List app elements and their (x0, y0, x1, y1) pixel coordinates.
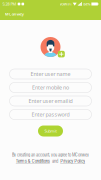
staticText: 84% (83, 1, 90, 7)
staticText: Privacy Policy (60, 158, 85, 164)
staticText: VoWiFi (59, 1, 71, 7)
staticText: Enter password (31, 111, 69, 118)
staticText: Enter mobile no (32, 84, 69, 91)
button[interactable]: Submit (38, 125, 63, 136)
staticText: 5:28 PM (2, 1, 16, 7)
staticText: Submit (44, 128, 56, 134)
button[interactable]: Enter password (9, 109, 91, 119)
button[interactable]: Terms & Conditions (16, 158, 50, 164)
button[interactable]: Privacy Policy (60, 158, 85, 164)
staticText: Enter user email id (28, 97, 72, 105)
staticText: and (52, 158, 58, 164)
button[interactable]: Enter mobile no (9, 82, 91, 92)
staticText: By creating an account, you agree to MCo… (12, 152, 89, 158)
staticText: Terms & Conditions (16, 158, 50, 164)
staticText: Enter user name (30, 70, 70, 78)
button[interactable]: Enter user email id (9, 96, 91, 106)
staticText: MConwey (5, 11, 24, 17)
button[interactable]: Enter user name (9, 69, 91, 79)
button[interactable]: Add profile photo (58, 51, 65, 57)
